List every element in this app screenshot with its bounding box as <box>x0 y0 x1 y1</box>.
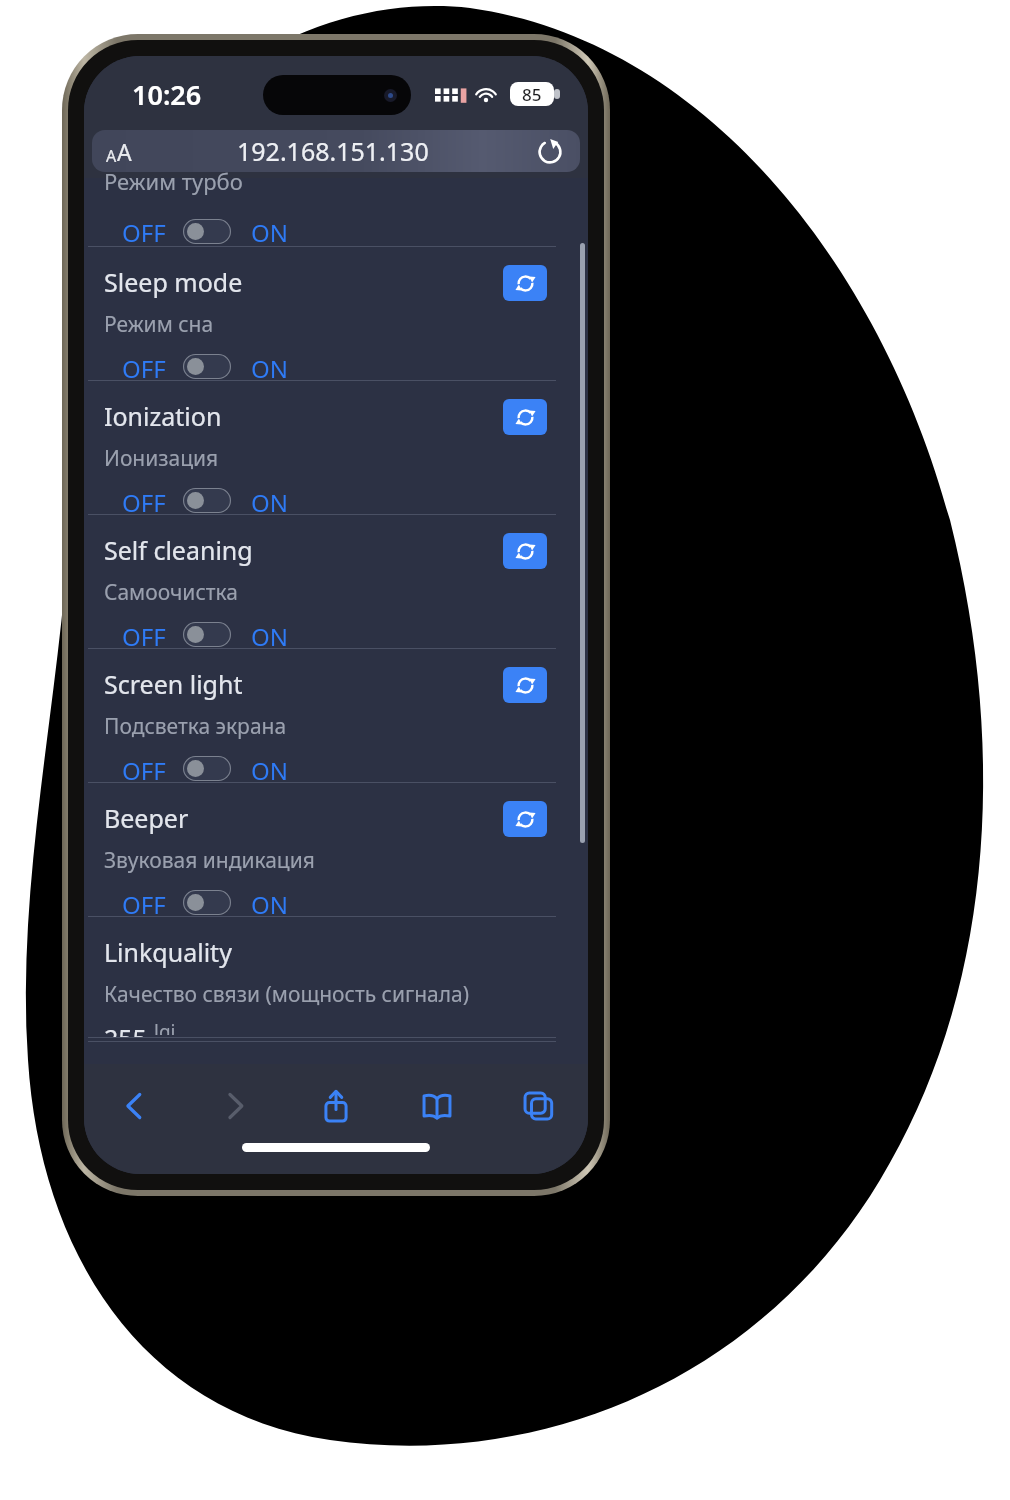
staticText: Качество связи (мощность сигнала) <box>104 980 470 1009</box>
staticText: 10:26 <box>132 76 202 113</box>
staticText: OFF <box>122 754 166 782</box>
button[interactable]: OFF <box>104 888 166 916</box>
staticText: Подсветка экрана <box>104 712 287 741</box>
staticText: ON <box>251 888 288 916</box>
staticText: Beeper <box>104 801 189 835</box>
staticText: A <box>106 145 117 167</box>
button[interactable]: Refresh <box>503 533 547 569</box>
button[interactable] <box>183 622 231 647</box>
button[interactable]: ON <box>251 620 288 648</box>
button[interactable]: Back <box>106 1078 162 1134</box>
button[interactable]: ON <box>251 754 288 782</box>
button[interactable]: OFF <box>104 486 166 514</box>
staticText: 85 <box>522 83 542 106</box>
button[interactable] <box>183 354 231 379</box>
button[interactable]: Reload <box>532 133 568 169</box>
button[interactable]: ON <box>251 352 288 380</box>
button[interactable]: Linkquality <box>84 917 588 1037</box>
staticText: A <box>117 136 132 167</box>
staticText: ON <box>251 216 288 246</box>
button[interactable]: Refresh <box>503 399 547 435</box>
staticText: ON <box>251 620 288 648</box>
button[interactable]: A <box>92 130 580 172</box>
button[interactable]: Ionization <box>84 381 588 514</box>
button[interactable]: Tabs <box>510 1078 566 1134</box>
staticText: Ionization <box>104 399 222 433</box>
staticText: Self cleaning <box>104 533 253 567</box>
staticText: Звуковая индикация <box>104 846 315 875</box>
staticText: lqi <box>154 1019 176 1035</box>
button[interactable]: Refresh <box>503 265 547 301</box>
button[interactable] <box>183 219 231 244</box>
staticText: ON <box>251 352 288 380</box>
staticText: Режим сна <box>104 310 214 339</box>
staticText: OFF <box>122 216 166 246</box>
button[interactable]: Beeper <box>84 783 588 916</box>
button[interactable]: Sleep mode <box>84 247 588 380</box>
staticText: Screen light <box>104 667 243 701</box>
staticText: OFF <box>122 888 166 916</box>
staticText: OFF <box>122 352 166 380</box>
button[interactable]: OFF <box>104 216 166 246</box>
button[interactable]: ON <box>251 486 288 514</box>
button[interactable]: ON <box>251 216 288 246</box>
button[interactable]: ON <box>251 888 288 916</box>
button[interactable]: Refresh <box>503 801 547 837</box>
staticText: ON <box>251 754 288 782</box>
button[interactable]: Screen light <box>84 649 588 782</box>
button[interactable]: OFF <box>104 620 166 648</box>
staticText: ON <box>251 486 288 514</box>
staticText: Самоочистка <box>104 578 238 607</box>
button[interactable]: Forward <box>207 1078 263 1134</box>
button[interactable]: OFF <box>104 754 166 782</box>
button[interactable]: Share <box>308 1078 364 1134</box>
button[interactable] <box>183 890 231 915</box>
button[interactable]: OFF <box>104 352 166 380</box>
staticText: OFF <box>122 486 166 514</box>
staticText: Ионизация <box>104 444 219 473</box>
button[interactable] <box>183 756 231 781</box>
staticText: Sleep mode <box>104 265 243 299</box>
staticText: Linkquality <box>104 935 232 969</box>
staticText: Режим турбо <box>104 166 243 196</box>
staticText: 255 <box>104 1021 147 1037</box>
button[interactable]: Refresh <box>503 667 547 703</box>
button[interactable]: Self cleaning <box>84 515 588 648</box>
staticText: 192.168.151.130 <box>237 134 429 168</box>
staticText: OFF <box>122 620 166 648</box>
button[interactable]: Bookmarks <box>409 1078 465 1134</box>
button[interactable] <box>183 488 231 513</box>
